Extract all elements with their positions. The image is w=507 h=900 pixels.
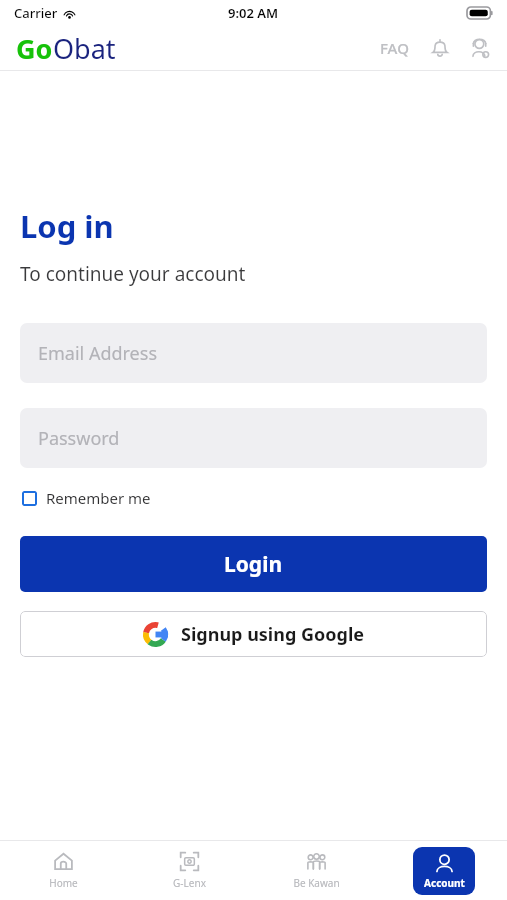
staticText: Home: [49, 876, 78, 890]
staticText: Go: [16, 30, 53, 67]
button[interactable]: Account: [413, 847, 475, 895]
staticText: Email Address: [38, 341, 158, 366]
button[interactable]: G-Lenx: [126, 841, 253, 900]
button[interactable]: Remember me: [20, 484, 153, 512]
button[interactable]: Home: [0, 841, 126, 900]
staticText: Account: [424, 876, 465, 890]
staticText: To continue your account: [20, 261, 246, 287]
button[interactable]: Email Address: [20, 323, 487, 383]
staticText: Remember me: [46, 488, 151, 508]
staticText: Obat: [53, 30, 116, 67]
staticText: G-Lenx: [173, 876, 206, 890]
staticText: 9:02 AM: [228, 4, 279, 22]
staticText: Password: [38, 426, 120, 451]
button[interactable]: Password: [20, 408, 487, 468]
staticText: Be Kawan: [293, 876, 340, 890]
button[interactable]: Notifications: [425, 33, 455, 63]
staticText: Log in: [20, 205, 114, 247]
button[interactable]: Login: [20, 536, 487, 592]
button[interactable]: Be Kawan: [253, 841, 380, 900]
button[interactable]: Signup using Google: [20, 611, 487, 657]
staticText: Signup using Google: [181, 622, 365, 647]
staticText: Login: [224, 550, 283, 579]
button[interactable]: FAQ: [376, 34, 413, 62]
staticText: FAQ: [380, 38, 409, 58]
button[interactable]: Customer support: [465, 33, 495, 63]
staticText: Carrier: [14, 4, 58, 22]
